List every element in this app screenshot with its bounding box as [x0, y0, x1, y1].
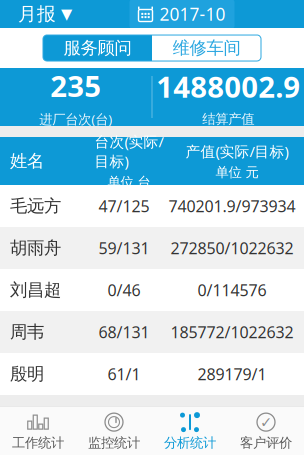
staticText: 0/114576 — [197, 279, 266, 301]
button[interactable]: 2017-10 — [129, 0, 234, 29]
staticText: 周韦 — [10, 321, 44, 343]
button[interactable]: 月报 — [0, 0, 72, 29]
staticText: 0/46 — [107, 279, 140, 301]
staticText: 分析统计 — [164, 435, 216, 451]
staticText: 毛远方 — [10, 195, 61, 217]
button[interactable]: 服务顾问 — [43, 35, 152, 61]
staticText: 工作统计 — [12, 435, 64, 451]
staticText: 1488002.9 — [156, 67, 300, 106]
button[interactable]: 维修车间 — [152, 35, 261, 61]
staticText: 47/125 — [98, 195, 149, 217]
staticText: 监控统计 — [88, 435, 140, 451]
staticText: ✓ — [260, 414, 272, 430]
staticText: 61/1 — [107, 363, 140, 385]
staticText: 月报 — [18, 2, 56, 25]
staticText: 235 — [50, 66, 101, 105]
staticText: 结算产值 — [202, 111, 254, 127]
staticText: 产值(实际/目标) — [185, 142, 288, 161]
staticText: 68/131 — [98, 321, 149, 343]
staticText: 客户评价 — [240, 435, 292, 451]
staticText: 姓名 — [10, 150, 44, 172]
staticText: 胡雨舟 — [10, 237, 61, 259]
button[interactable]: 工作统计 — [0, 407, 76, 455]
staticText: 单位 台 — [107, 174, 150, 190]
staticText: 殷明 — [10, 363, 44, 385]
staticText: 740201.9/973934 — [168, 195, 295, 217]
staticText: 2017-10 — [159, 2, 225, 25]
staticText: ▼ — [61, 6, 72, 22]
button[interactable]: 分析统计 — [152, 407, 228, 455]
staticText: 台次(实际/目标) — [94, 132, 163, 171]
staticText: 289179/1 — [197, 363, 266, 385]
staticText: 59/131 — [98, 237, 149, 259]
staticText: 单位 元 — [215, 164, 258, 180]
staticText: 272850/1022632 — [170, 237, 293, 259]
staticText: 进厂台次(台) — [39, 110, 112, 128]
staticText: 185772/1022632 — [170, 321, 293, 343]
staticText: 刘昌超 — [10, 279, 61, 301]
staticText: 维修车间 — [172, 37, 240, 59]
staticText: 服务顾问 — [63, 37, 131, 59]
button[interactable]: ✓ — [228, 407, 304, 455]
button[interactable]: 监控统计 — [76, 407, 152, 455]
